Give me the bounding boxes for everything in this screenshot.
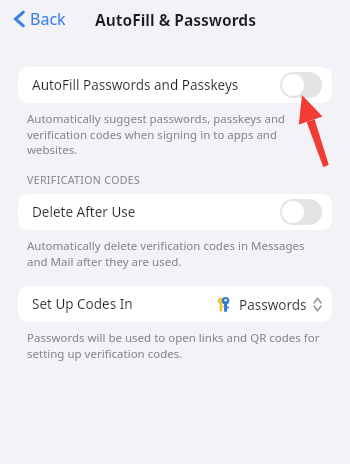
staticText: Delete After Use <box>32 203 136 221</box>
staticText: Automatically suggest passwords, passkey… <box>27 111 326 157</box>
button[interactable]: AutoFill Passwords and Passkeys <box>18 67 332 103</box>
button[interactable]: Delete After Use <box>18 194 332 230</box>
staticText: AutoFill & Passwords <box>95 9 256 30</box>
staticText: VERIFICATION CODES <box>27 173 141 187</box>
button[interactable]: AutoFill Passwords and Passkeys toggle, … <box>280 72 322 98</box>
staticText: Set Up Codes In <box>32 295 133 313</box>
staticText: Passwords <box>239 296 307 314</box>
button[interactable]: Back <box>10 4 70 34</box>
button[interactable]: Delete After Use toggle, off <box>280 199 322 225</box>
staticText: Automatically delete verification codes … <box>27 238 326 269</box>
staticText: Passwords will be used to open links and… <box>27 330 326 361</box>
staticText: AutoFill Passwords and Passkeys <box>32 76 239 94</box>
staticText: Back <box>30 8 66 30</box>
button[interactable]: Set Up Codes In <box>18 286 332 322</box>
